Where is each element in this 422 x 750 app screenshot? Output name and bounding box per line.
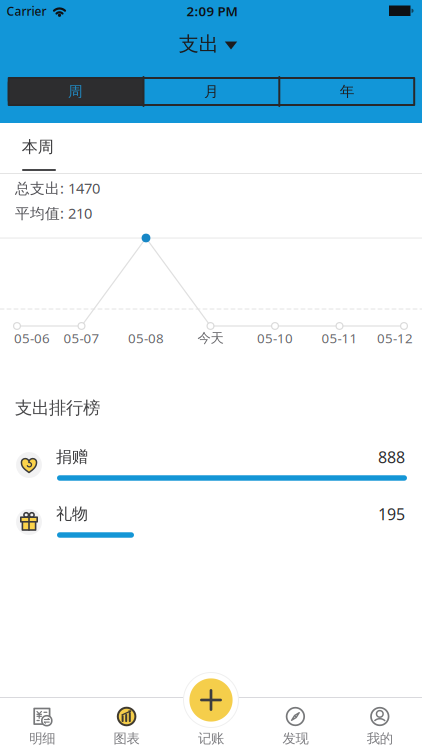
staticText: 总支出: 1470 [15, 178, 100, 198]
staticText: 记账 [198, 730, 224, 747]
button[interactable]: 本周 [22, 137, 54, 157]
button[interactable]: 捐赠 [12, 445, 410, 495]
staticText: Carrier [6, 3, 46, 19]
button[interactable]: 礼物 [12, 502, 410, 552]
button[interactable]: 发现 [253, 697, 338, 750]
staticText: 明细 [29, 730, 55, 747]
staticText: 本周 [22, 137, 54, 157]
staticText: 发现 [282, 730, 308, 747]
staticText: 今天 [197, 330, 223, 346]
button[interactable]: 图表 [84, 697, 169, 750]
staticText: 平均值: 210 [15, 203, 92, 223]
staticText: 05-07 [63, 329, 99, 347]
staticText: 支出 [179, 32, 219, 56]
staticText: 我的 [367, 730, 393, 747]
staticText: 05-12 [377, 329, 413, 347]
staticText: 支出排行榜 [15, 397, 100, 419]
button[interactable]: 年 [279, 77, 415, 106]
staticText: 月 [204, 82, 219, 100]
staticText: 图表 [114, 730, 140, 747]
staticText: 888 [378, 446, 405, 468]
button[interactable]: 月 [143, 77, 279, 106]
staticText: 05-11 [321, 329, 357, 347]
staticText: 礼物 [56, 504, 88, 524]
staticText: 05-10 [257, 329, 293, 347]
staticText: 年 [340, 82, 355, 100]
staticText: 05-06 [14, 329, 50, 347]
staticText: 05-08 [128, 329, 164, 347]
button[interactable]: 我的 [338, 697, 422, 750]
staticText: 周 [68, 82, 83, 100]
staticText: 2:09 PM [186, 2, 237, 20]
button[interactable]: 周 [8, 77, 143, 106]
button[interactable]: 记账 [180, 669, 242, 731]
staticText: 捐赠 [56, 447, 88, 467]
button[interactable]: 支出 [179, 32, 237, 56]
staticText: 195 [378, 503, 405, 525]
button[interactable]: 明细 [0, 697, 84, 750]
